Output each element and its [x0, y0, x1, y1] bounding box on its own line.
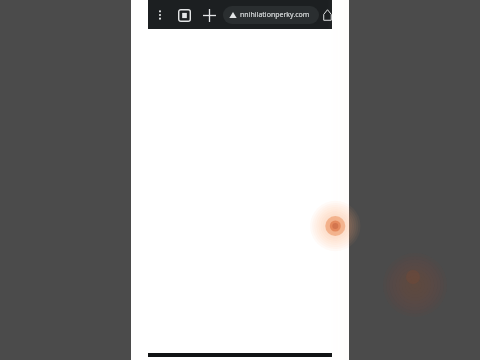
button[interactable]: More options: [151, 6, 169, 24]
button[interactable]: Tabs: [174, 5, 194, 25]
button[interactable]: nnihilationperky.com: [223, 6, 319, 24]
button[interactable]: Home: [323, 5, 332, 25]
staticText: nnihilationperky.com: [240, 10, 310, 20]
button[interactable]: New tab: [199, 5, 219, 25]
